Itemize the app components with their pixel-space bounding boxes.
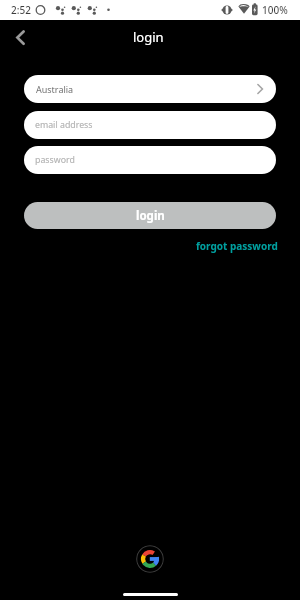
staticText: 2:52: [11, 3, 31, 17]
staticText: 100%: [262, 3, 288, 17]
staticText: login: [136, 208, 165, 224]
staticText: login: [133, 28, 164, 46]
staticText: forgot password: [196, 239, 278, 253]
button[interactable]: email address: [24, 111, 276, 139]
button[interactable]: Sign in with Google: [136, 545, 164, 573]
button[interactable]: password: [24, 146, 276, 174]
button[interactable]: Back: [6, 23, 34, 51]
staticText: email address: [35, 119, 93, 131]
button[interactable]: login: [24, 202, 276, 229]
button[interactable]: Australia: [24, 75, 276, 103]
button[interactable]: forgot password: [196, 239, 278, 253]
staticText: Australia: [36, 83, 74, 95]
staticText: password: [35, 154, 75, 166]
